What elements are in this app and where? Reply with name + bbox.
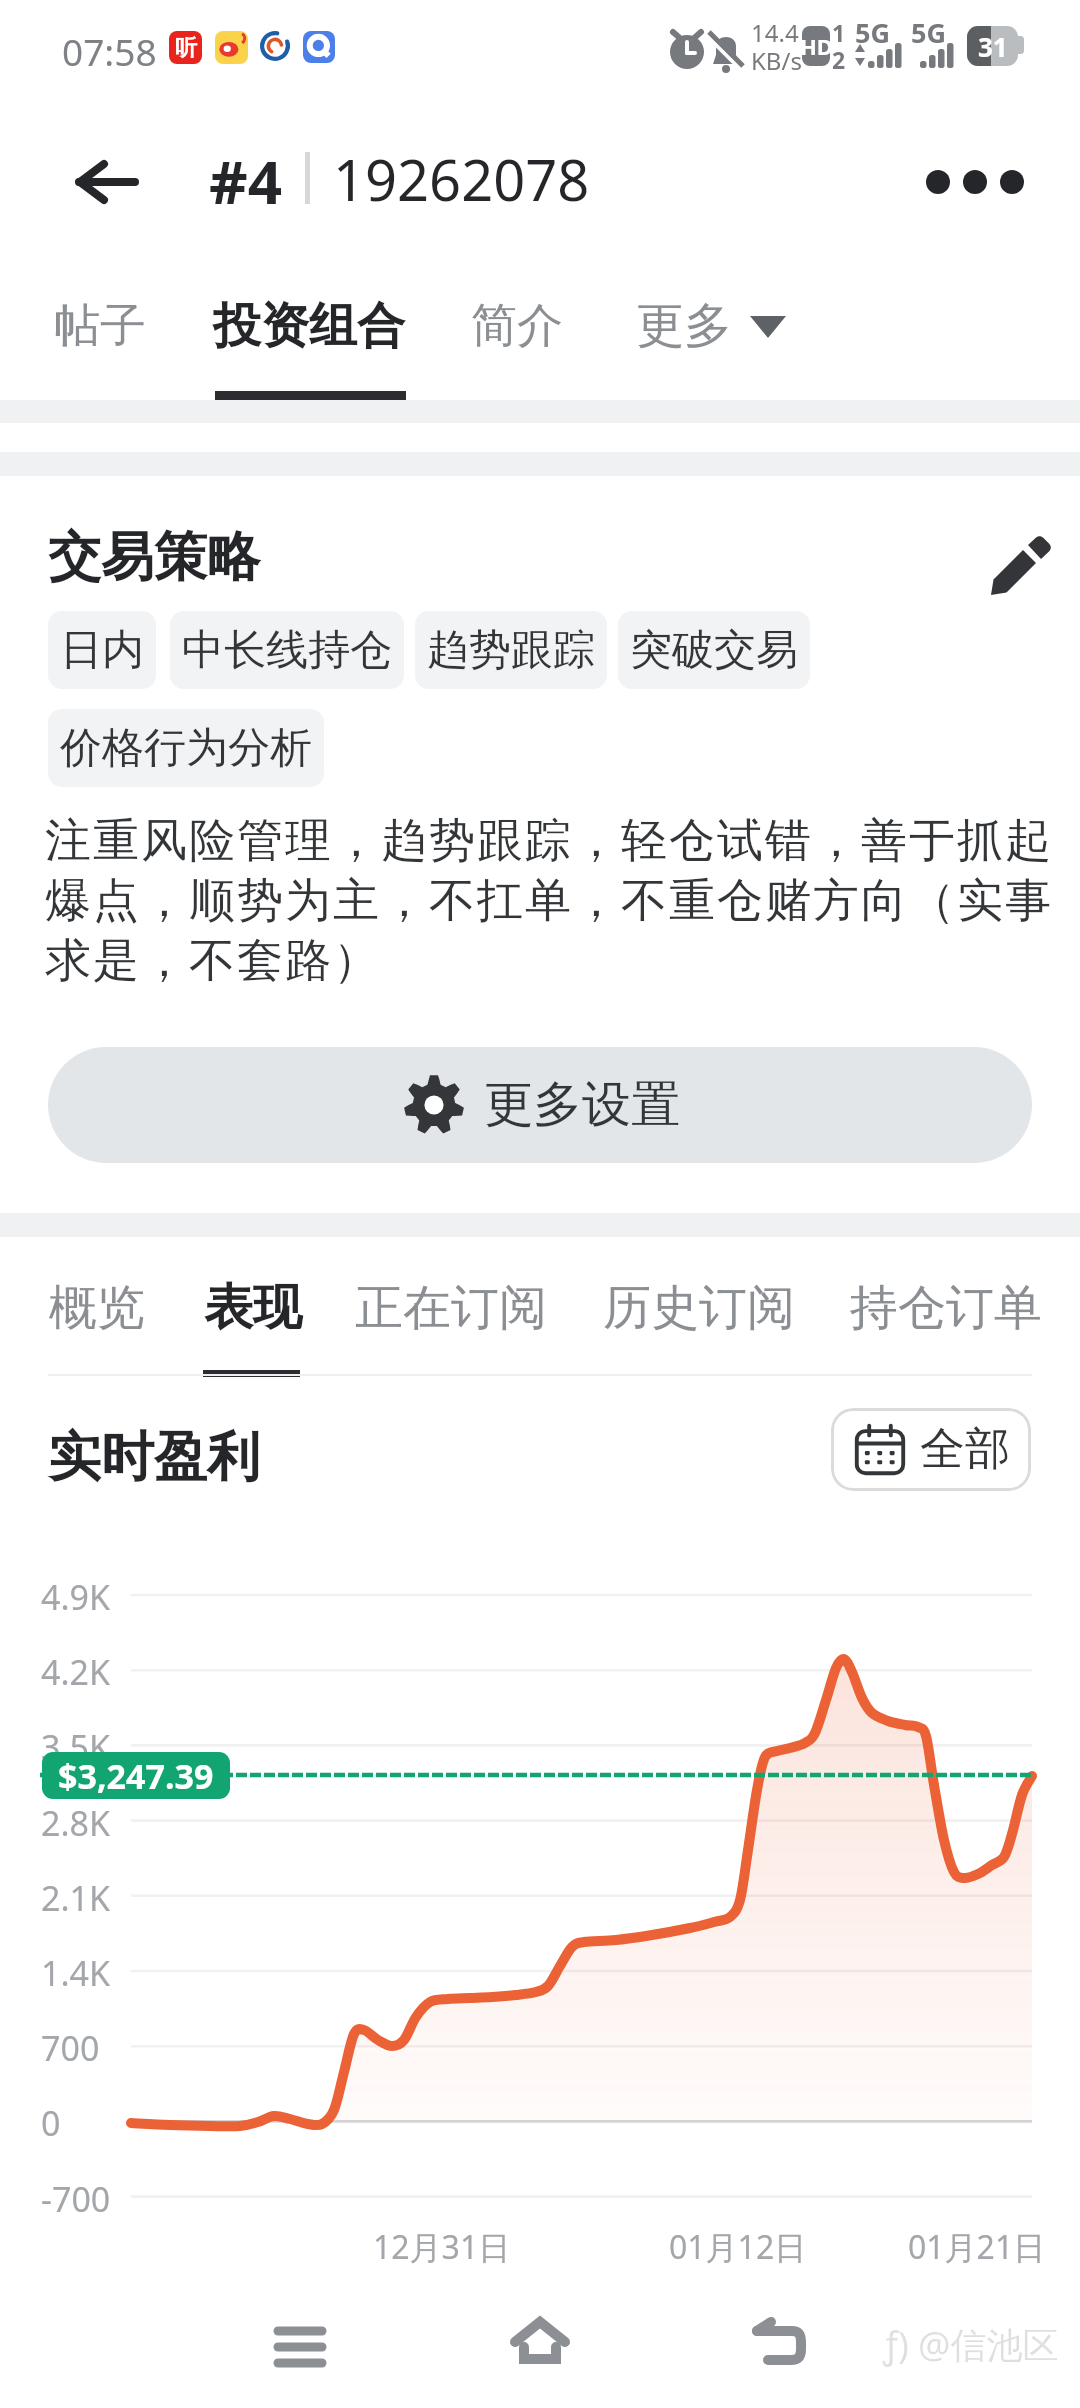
staticText: 正在订阅 <box>355 1278 547 1338</box>
button[interactable]: 更多 <box>636 286 812 366</box>
staticText: 简介 <box>471 297 563 355</box>
staticText: 注重风险管理，趋势跟踪，轻仓试错，善于抓起爆点，顺势为主，不扛单，不重仓赌方向（… <box>45 812 1063 989</box>
button[interactable]: Home <box>490 2305 590 2385</box>
button[interactable]: 趋势跟踪 <box>415 611 607 689</box>
staticText: 2.1K <box>41 1875 111 1921</box>
staticText: 14.4 <box>751 16 799 49</box>
staticText: 01月21日 <box>908 2225 1046 2269</box>
staticText: 5G <box>855 14 890 51</box>
staticText: 5G <box>911 14 946 51</box>
staticText: 实时盈利 <box>48 1424 260 1491</box>
staticText: 更多 <box>636 296 732 356</box>
button[interactable]: More options <box>920 140 1030 224</box>
staticText: 700 <box>41 2025 100 2071</box>
staticText: ƒ) @信池区 <box>883 2320 1059 2369</box>
staticText: #4 <box>209 140 283 222</box>
staticText: 01月12日 <box>669 2225 807 2269</box>
staticText: 日内 <box>60 624 144 677</box>
staticText: 4.2K <box>41 1649 111 1695</box>
button[interactable]: 中长线持仓 <box>170 611 404 689</box>
staticText: 1.4K <box>41 1950 111 1996</box>
staticText: 突破交易 <box>630 624 798 677</box>
staticText: ƒ) @信池区 <box>881 2318 1057 2367</box>
staticText: 2.8K <box>41 1800 111 1846</box>
button[interactable]: Back <box>730 2305 830 2385</box>
button[interactable]: 全部 <box>831 1408 1031 1491</box>
staticText: 中长线持仓 <box>182 624 392 677</box>
staticText: KB/s <box>751 44 802 77</box>
button[interactable]: Back <box>50 132 160 232</box>
button[interactable]: 持仓订单 <box>850 1268 1042 1348</box>
button[interactable]: 日内 <box>48 611 156 689</box>
button[interactable]: 历史订阅 <box>603 1268 795 1348</box>
button[interactable]: 投资组合 <box>200 284 417 368</box>
staticText: 更多设置 <box>484 1074 680 1136</box>
button[interactable]: 简介 <box>460 286 574 366</box>
staticText: 概览 <box>49 1278 145 1338</box>
staticText: 交易策略 <box>48 524 260 591</box>
staticText: 价格行为分析 <box>60 722 312 775</box>
staticText: 全部 <box>920 1421 1010 1478</box>
button[interactable]: Edit <box>978 522 1058 602</box>
button[interactable]: 更多设置 <box>48 1047 1032 1163</box>
staticText: HD <box>800 31 833 61</box>
staticText: 投资组合 <box>213 296 405 356</box>
button[interactable]: 突破交易 <box>618 611 810 689</box>
staticText: 表现 <box>204 1277 302 1339</box>
staticText: 19262078 <box>333 141 590 217</box>
button[interactable]: 正在订阅 <box>355 1268 547 1348</box>
staticText: $3,247.39 <box>58 1753 214 1799</box>
staticText: -700 <box>41 2176 111 2222</box>
staticText: 听 <box>175 34 197 62</box>
staticText: 历史订阅 <box>603 1278 795 1338</box>
button[interactable]: 价格行为分析 <box>48 709 324 787</box>
staticText: 12月31日 <box>373 2225 511 2269</box>
staticText: 2 <box>832 44 846 75</box>
button[interactable]: Recent apps <box>250 2305 350 2385</box>
button[interactable]: 概览 <box>47 1268 147 1348</box>
button[interactable]: 表现 <box>197 1266 309 1350</box>
staticText: 4.9K <box>41 1574 111 1620</box>
staticText: 趋势跟踪 <box>427 624 595 677</box>
staticText: 31 <box>978 29 1008 64</box>
staticText: 0 <box>41 2100 61 2146</box>
staticText: 帖子 <box>54 297 146 355</box>
button[interactable]: 帖子 <box>40 286 160 366</box>
staticText: 1 <box>832 17 846 48</box>
staticText: 3.5K <box>41 1724 111 1770</box>
staticText: 持仓订单 <box>850 1278 1042 1338</box>
staticText: 07:58 <box>62 26 157 76</box>
